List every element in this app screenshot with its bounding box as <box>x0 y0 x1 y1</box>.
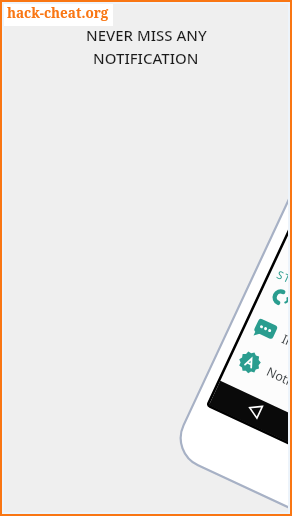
staticText: hack-cheat.org <box>7 4 109 22</box>
staticText: NOTIFICATION <box>93 48 199 68</box>
button[interactable] <box>240 280 290 316</box>
staticText: NEVER MISS ANY <box>86 25 207 45</box>
button[interactable] <box>240 398 268 422</box>
button[interactable] <box>228 316 290 350</box>
button[interactable] <box>214 350 290 384</box>
button[interactable]: hack-cheat.org <box>2 2 113 26</box>
